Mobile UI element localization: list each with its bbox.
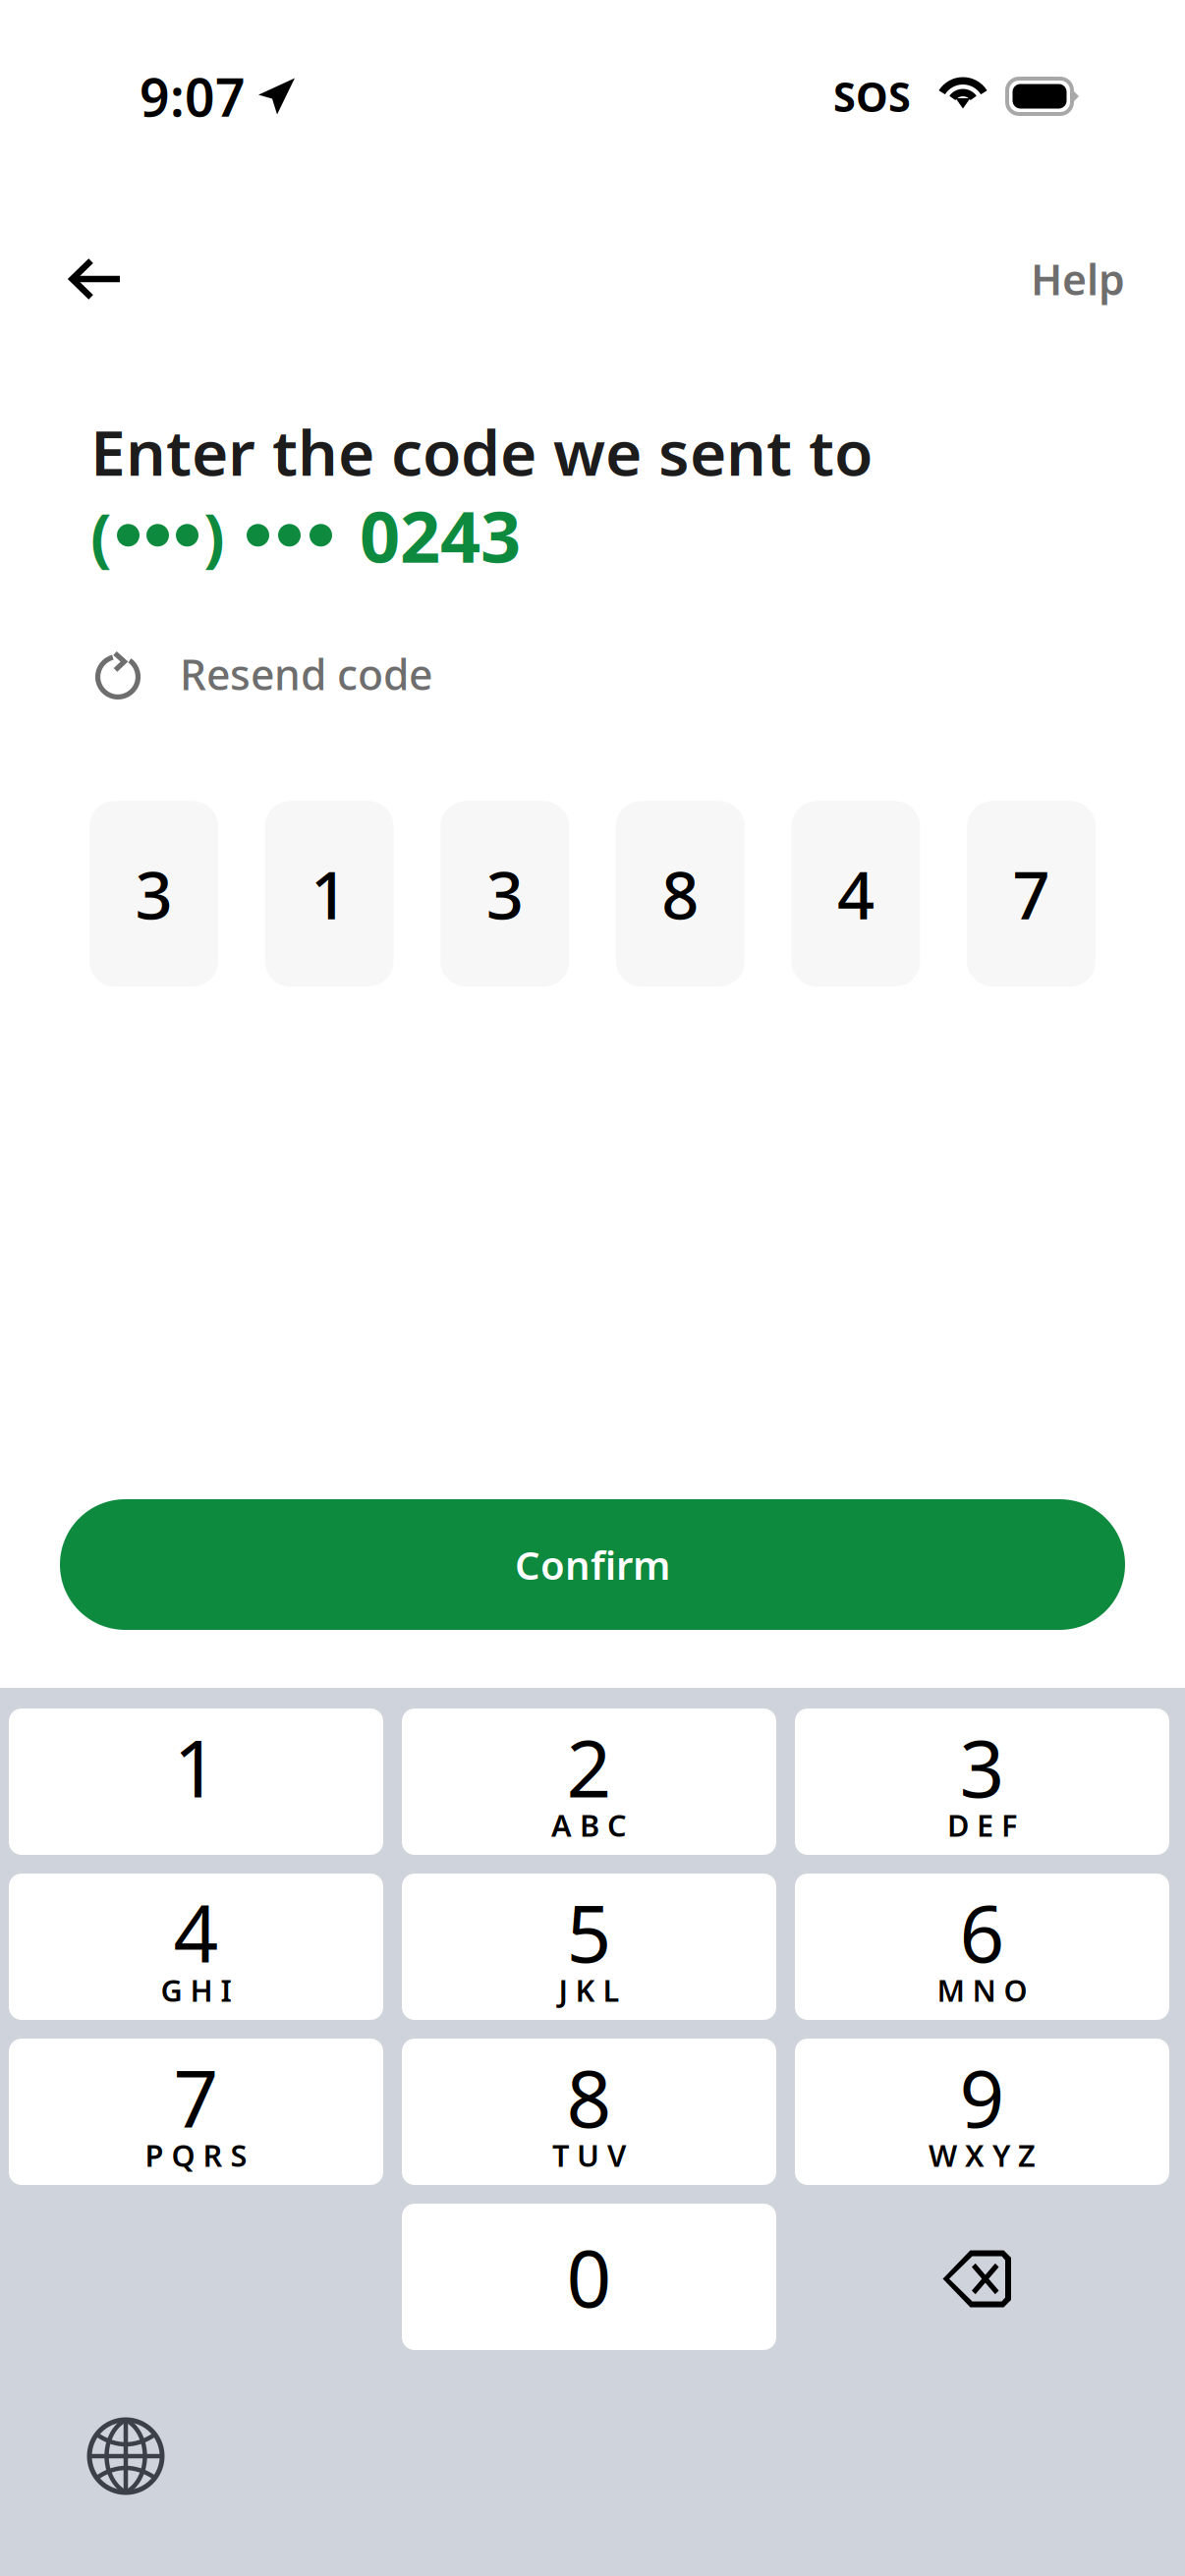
staticText: SOS bbox=[833, 69, 911, 123]
staticText: 0243 bbox=[360, 488, 521, 582]
staticText: 9:07 bbox=[140, 62, 246, 131]
staticText: Resend code bbox=[180, 646, 432, 702]
staticText: Confirm bbox=[515, 1538, 670, 1591]
staticText: 4 bbox=[173, 1880, 219, 1984]
staticText: 3 bbox=[486, 850, 523, 937]
button[interactable]: 6 bbox=[795, 1874, 1169, 2020]
button[interactable]: Resend code bbox=[95, 638, 432, 710]
staticText: P Q R S bbox=[145, 2135, 247, 2175]
button[interactable]: Change keyboard bbox=[63, 2395, 189, 2517]
staticText: 7 bbox=[1013, 850, 1050, 937]
staticText: D E F bbox=[947, 1805, 1017, 1845]
button[interactable]: Help bbox=[1021, 237, 1135, 321]
button[interactable]: Confirm bbox=[60, 1499, 1125, 1630]
button[interactable]: 9 bbox=[795, 2039, 1169, 2185]
staticText: G H I bbox=[161, 1970, 231, 2010]
staticText: 1 bbox=[173, 1715, 219, 1819]
button[interactable]: 2 bbox=[402, 1708, 776, 1855]
button[interactable]: 3 bbox=[795, 1708, 1169, 1855]
button[interactable]: Back bbox=[47, 237, 141, 321]
button[interactable]: 0 bbox=[402, 2204, 776, 2350]
staticText: ) bbox=[203, 493, 225, 577]
button[interactable]: 5 bbox=[402, 1874, 776, 2020]
staticText: W X Y Z bbox=[929, 2135, 1036, 2175]
staticText: 1 bbox=[311, 850, 348, 937]
staticText: 5 bbox=[566, 1880, 612, 1984]
staticText: Help bbox=[1031, 251, 1125, 307]
staticText: 8 bbox=[566, 2045, 612, 2149]
button[interactable]: Delete bbox=[795, 2204, 1169, 2350]
staticText: 2 bbox=[566, 1715, 612, 1819]
staticText: ( bbox=[90, 493, 112, 577]
staticText: M N O bbox=[937, 1970, 1027, 2010]
staticText: J K L bbox=[559, 1970, 620, 2010]
staticText: 3 bbox=[135, 850, 172, 937]
staticText: 6 bbox=[959, 1880, 1005, 1984]
button[interactable]: 7 bbox=[9, 2039, 383, 2185]
staticText: 7 bbox=[173, 2045, 219, 2149]
staticText: 0 bbox=[566, 2225, 612, 2329]
staticText: 4 bbox=[837, 850, 874, 937]
button[interactable]: 8 bbox=[402, 2039, 776, 2185]
staticText: 9 bbox=[959, 2045, 1005, 2149]
staticText: 8 bbox=[662, 850, 699, 937]
button[interactable]: 1 bbox=[9, 1708, 383, 1855]
button[interactable]: 4 bbox=[9, 1874, 383, 2020]
staticText: T U V bbox=[552, 2135, 626, 2175]
staticText: A B C bbox=[551, 1805, 627, 1845]
staticText: 3 bbox=[959, 1715, 1005, 1819]
staticText: Enter the code we sent to bbox=[90, 410, 873, 493]
